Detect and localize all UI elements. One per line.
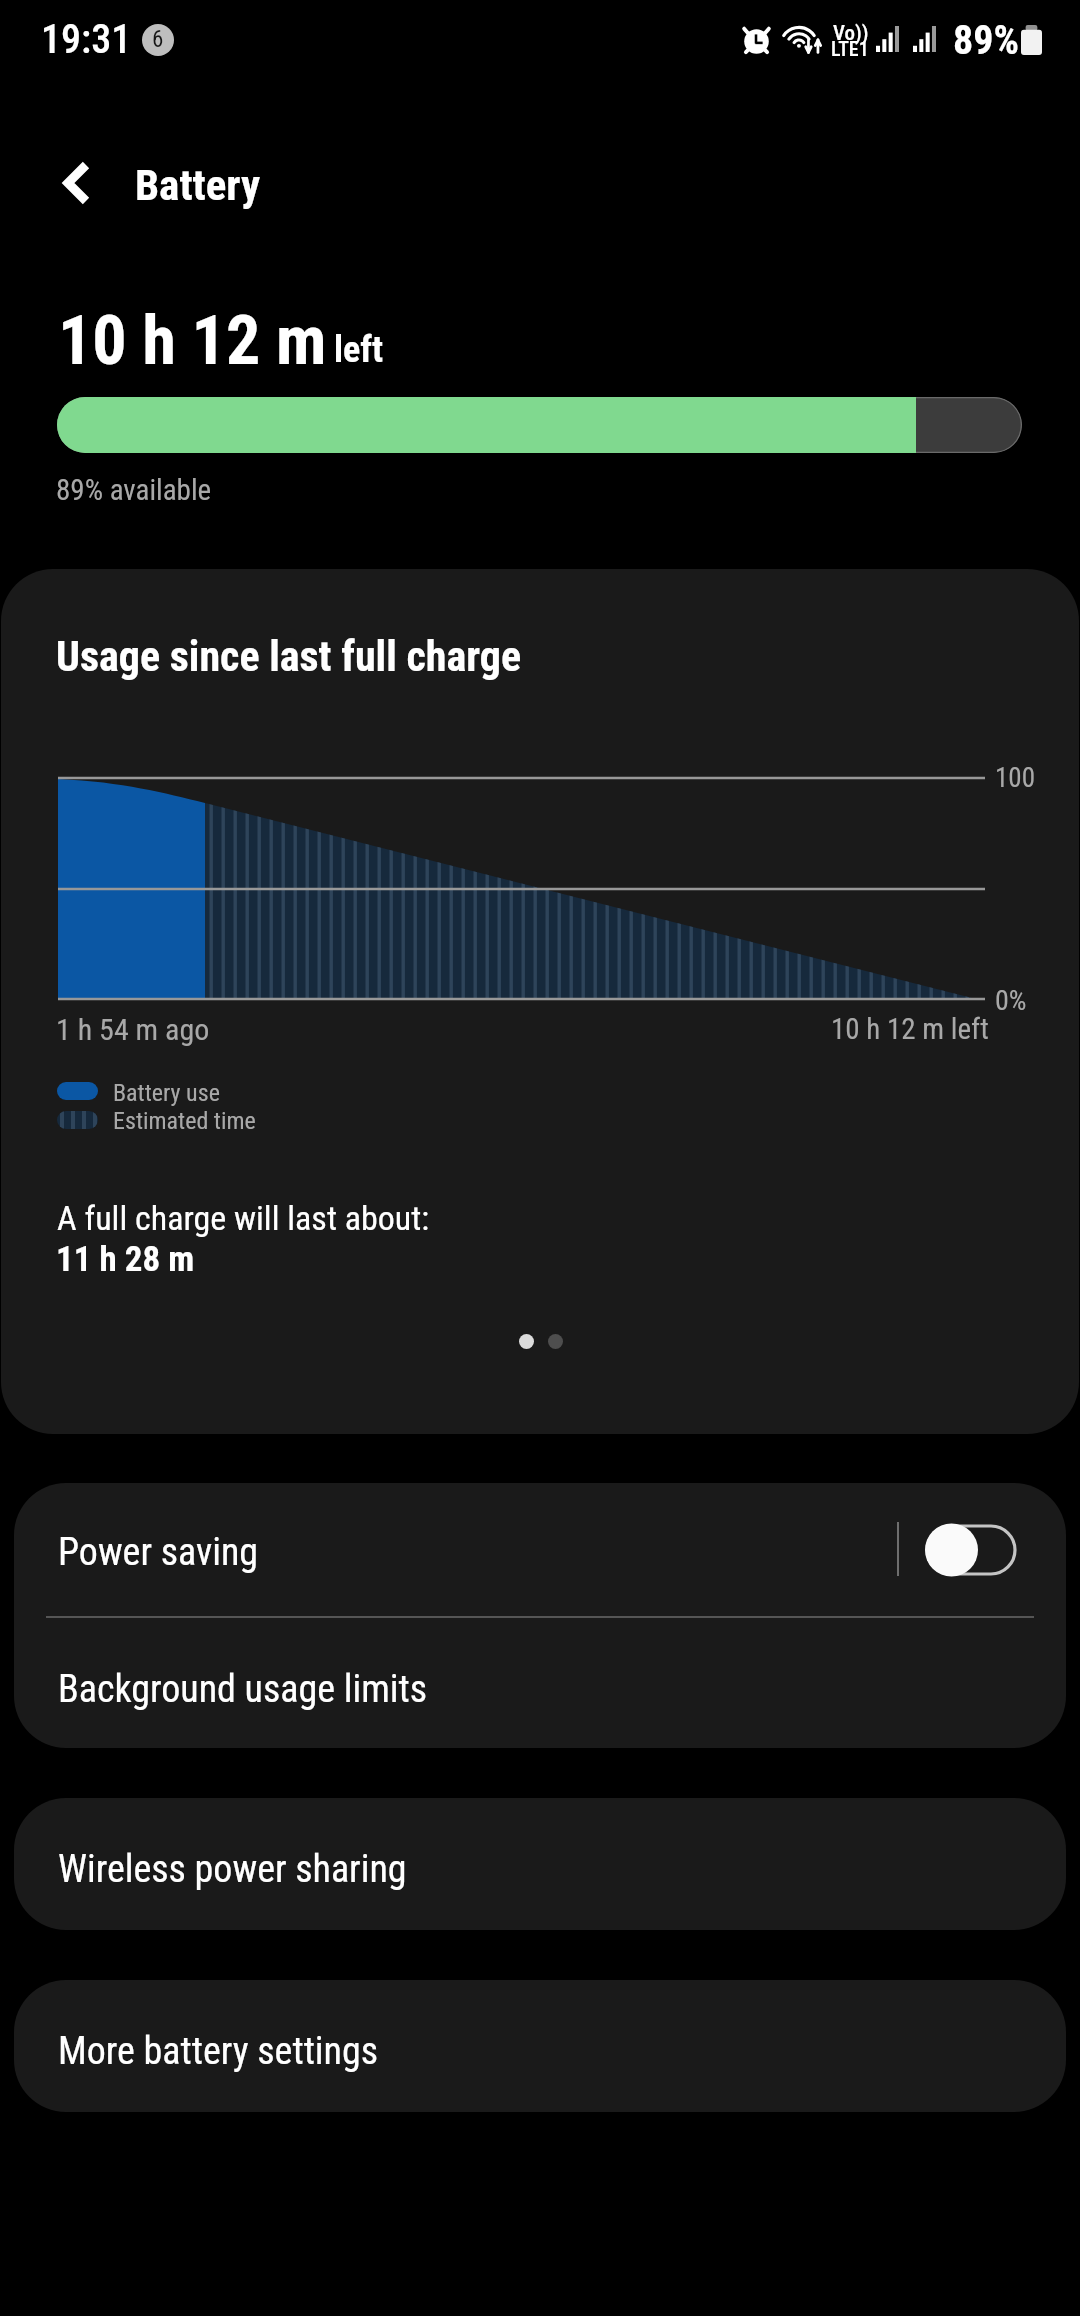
staticText: 6 [152,26,164,53]
staticText: Battery use [113,1079,220,1107]
staticText: 100 [995,762,1035,794]
staticText: 19:31 [41,16,132,63]
staticText: 10 h 12 m [58,301,327,381]
button[interactable]: Power saving [14,1483,1066,1616]
staticText: Usage since last full charge [56,632,521,681]
staticText: 1 h 54 m ago [56,1012,210,1047]
button[interactable]: Background usage limits [14,1618,1066,1748]
staticText: More battery settings [58,2029,379,2074]
staticText: Wireless power sharing [58,1847,407,1892]
staticText: 0% [995,984,1027,1017]
button[interactable]: More battery settings [14,1980,1066,2112]
button[interactable]: Wireless power sharing [14,1798,1066,1930]
staticText: Background usage limits [58,1667,428,1712]
button[interactable]: Power saving toggle [924,1523,1016,1577]
staticText: 11 h 28 m [56,1239,195,1280]
button[interactable]: Back [28,134,126,232]
staticText: left [334,329,384,371]
staticText: Battery [135,160,261,210]
staticText: A full charge will last about: [57,1198,430,1238]
staticText: 10 h 12 m left [831,1012,989,1046]
staticText: LTE1 [831,37,869,60]
staticText: Estimated time [113,1107,256,1135]
staticText: Power saving [58,1530,259,1575]
staticText: 89% available [56,473,212,507]
staticText: 89% [953,17,1019,64]
staticText: Vo)) [833,21,869,46]
